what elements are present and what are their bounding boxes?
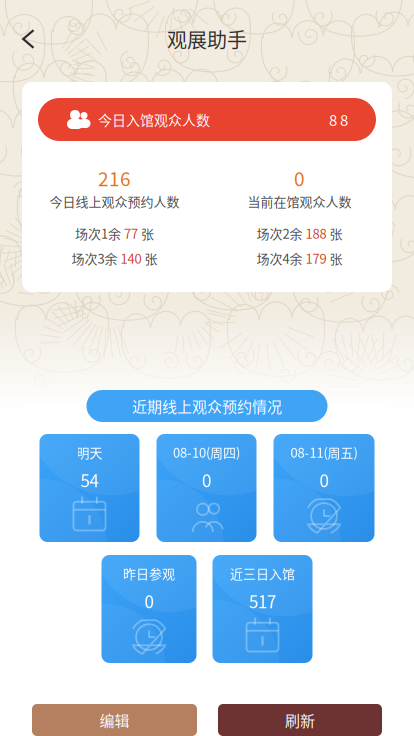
staticText: 张 [138, 224, 154, 242]
button[interactable]: 昨日参观 [101, 555, 196, 663]
staticText: 编辑 [99, 709, 129, 731]
staticText: 昨日参观 [123, 564, 175, 583]
staticText: 近期线上观众预约情况 [132, 395, 282, 417]
staticText: 54 [80, 468, 98, 492]
staticText: 场次2余 [256, 224, 305, 242]
button[interactable]: 近三日入馆 [212, 555, 312, 663]
button[interactable]: 明天 [39, 434, 139, 542]
staticText: 179 [305, 249, 326, 267]
staticText: 0 [144, 589, 153, 613]
staticText: 0 [319, 468, 328, 492]
button[interactable]: 编辑 [32, 704, 197, 736]
staticText: 张 [326, 249, 342, 267]
staticText: 张 [141, 249, 157, 267]
staticText: 张 [326, 224, 342, 242]
staticText: 8 8 [329, 109, 348, 130]
button[interactable]: 近期线上观众预约情况 [86, 390, 327, 422]
button[interactable]: 刷新 [218, 704, 382, 736]
button[interactable]: 今日入馆观众人数 [38, 98, 376, 141]
staticText: 场次4余 [256, 249, 305, 267]
staticText: 08-10(周四) [173, 443, 240, 462]
staticText: 场次1余 [75, 224, 124, 242]
button[interactable]: Back [0, 19, 49, 59]
staticText: 216 [98, 164, 131, 192]
staticText: 近三日入馆 [230, 564, 295, 583]
staticText: 场次3余 [71, 249, 120, 267]
staticText: 今日入馆观众人数 [98, 109, 210, 130]
staticText: 观展助手 [167, 24, 247, 53]
staticText: 明天 [76, 443, 102, 462]
staticText: 77 [124, 224, 138, 242]
staticText: 140 [120, 249, 141, 267]
staticText: 188 [305, 224, 326, 242]
staticText: 08-11(周五) [290, 443, 357, 462]
staticText: 当前在馆观众人数 [247, 192, 351, 210]
staticText: 今日线上观众预约人数 [49, 192, 179, 210]
button[interactable]: 08-10(周四) [156, 434, 256, 542]
staticText: 517 [249, 589, 276, 613]
staticText: 0 [202, 468, 211, 492]
staticText: 0 [294, 164, 305, 192]
button[interactable]: 08-11(周五) [273, 434, 374, 542]
staticText: 刷新 [285, 709, 315, 731]
